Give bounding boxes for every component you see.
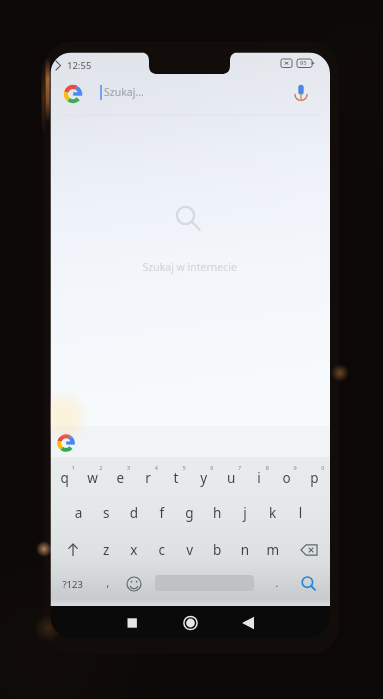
button[interactable] <box>0 0 383 699</box>
